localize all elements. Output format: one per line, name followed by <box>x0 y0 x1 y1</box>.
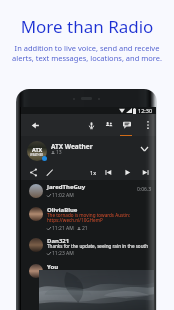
button[interactable]: You <box>20 263 156 310</box>
button[interactable]: Previous <box>102 166 114 178</box>
button[interactable]: OliviaBlue <box>20 206 156 235</box>
staticText: JaredTheGuy <box>47 183 86 191</box>
staticText: Dan321 <box>47 237 70 245</box>
staticText: OliviaBlue <box>47 206 78 214</box>
button[interactable]: Play <box>121 166 133 178</box>
staticText: 11:02 AM <box>52 192 74 199</box>
staticText: ATX Weather <box>51 142 93 151</box>
staticText: 11:23 AM <box>52 250 74 257</box>
staticText: 1x <box>90 169 97 176</box>
staticText: 11:21 AM <box>52 225 74 232</box>
staticText: 12:30 <box>138 107 153 114</box>
button[interactable]: Next <box>139 166 151 178</box>
staticText: You <box>47 263 59 271</box>
staticText: 13 <box>56 149 62 156</box>
button[interactable]: More options <box>141 118 155 132</box>
button[interactable]: 1x <box>89 169 98 176</box>
button[interactable]: Collapse <box>137 142 151 156</box>
staticText: More than Radio <box>0 15 174 38</box>
button[interactable]: Back <box>28 118 42 132</box>
button[interactable]: Voice message <box>84 118 98 132</box>
button[interactable]: Share <box>27 166 39 178</box>
button[interactable]: Group members <box>102 118 116 132</box>
button[interactable]: JaredTheGuy <box>20 180 156 206</box>
staticText: In addition to live voice, send and rece… <box>0 43 174 63</box>
button[interactable]: Chat <box>120 118 134 132</box>
button[interactable]: Dan321 <box>20 237 156 263</box>
staticText: ATX <box>32 146 43 153</box>
staticText: 0:06.3 <box>137 186 152 193</box>
staticText: Thanks for the update, seeing rain in th… <box>47 243 148 249</box>
button[interactable]: Edit <box>43 166 55 178</box>
staticText: The tornado is moving towards Austin: <box>47 212 131 218</box>
staticText: 21 <box>82 225 88 232</box>
staticText: https://wech.nl/10GHemP <box>47 217 103 223</box>
staticText: WEATHER <box>30 153 44 157</box>
